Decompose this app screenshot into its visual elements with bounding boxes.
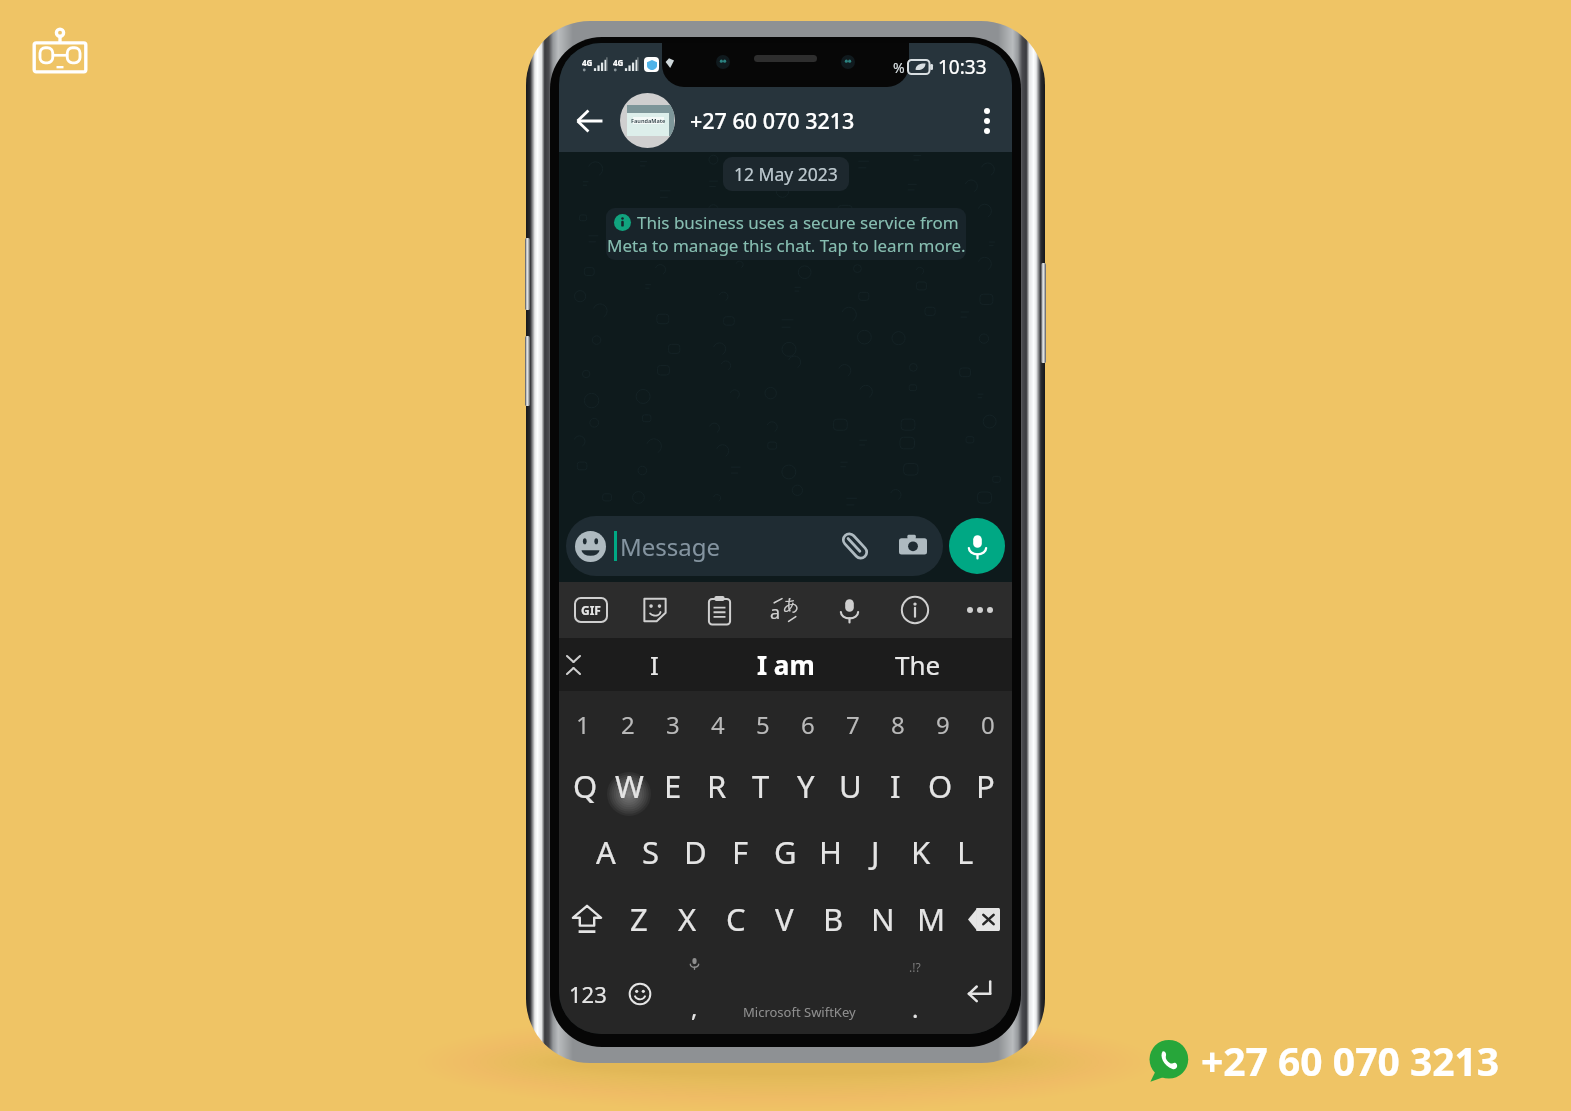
button[interactable]: 5 [740, 695, 785, 753]
staticText: Meta to manage this chat. Tap to learn m… [607, 234, 966, 257]
staticText: I [650, 647, 659, 682]
button[interactable]: 2 [605, 695, 650, 753]
staticText: L [957, 831, 974, 873]
button[interactable]: Emoji [617, 953, 663, 1034]
staticText: U [839, 765, 862, 807]
button[interactable]: Expand [559, 638, 588, 691]
button[interactable]: X [663, 885, 711, 953]
staticText: a [770, 600, 781, 625]
staticText: +27 60 070 3213 [1201, 1034, 1500, 1087]
button[interactable]: This business uses a secure service from [606, 208, 966, 260]
staticText: W [615, 765, 644, 807]
button[interactable]: Y [783, 753, 828, 819]
button[interactable]: G [763, 819, 808, 885]
button[interactable]: I [873, 753, 918, 819]
button[interactable]: Z [615, 885, 663, 953]
staticText: 12 May 2023 [734, 162, 838, 186]
staticText: X [678, 898, 697, 940]
button[interactable]: E [651, 753, 695, 819]
button[interactable]: Shift [559, 885, 615, 953]
staticText: 2 [621, 708, 635, 741]
staticText: 3 [666, 708, 680, 741]
button[interactable]: Q [563, 753, 607, 819]
button[interactable]: Space [725, 953, 884, 1034]
button[interactable]: Voice input [817, 582, 882, 638]
staticText: B [823, 898, 844, 940]
button[interactable]: Clipboard [687, 582, 752, 638]
button[interactable]: 6 [785, 695, 830, 753]
button[interactable]: Comma [663, 953, 725, 1034]
button[interactable]: Backspace [956, 885, 1012, 953]
button[interactable]: J [853, 819, 898, 885]
button[interactable]: More options [962, 89, 1012, 152]
button[interactable]: Attach [837, 528, 873, 564]
button[interactable]: N [858, 885, 907, 953]
button[interactable]: Camera [895, 528, 931, 564]
staticText: Z [630, 898, 648, 940]
button[interactable]: O [918, 753, 963, 819]
staticText: G [774, 831, 797, 873]
staticText: V [775, 898, 794, 940]
button[interactable]: H [808, 819, 853, 885]
button[interactable]: Voice message [949, 518, 1005, 574]
button[interactable]: I am [720, 638, 852, 691]
staticText: % [893, 58, 905, 77]
button[interactable]: B [809, 885, 858, 953]
button[interactable]: Stickers [623, 582, 687, 638]
button[interactable]: Profile photo [620, 93, 675, 148]
button[interactable]: 3 [650, 695, 695, 753]
button[interactable]: P [963, 753, 1008, 819]
button[interactable]: 12 May 2023 [723, 157, 849, 191]
staticText: 123 [569, 979, 607, 1009]
button[interactable]: F [718, 819, 763, 885]
staticText: .!? [909, 959, 921, 975]
staticText: 8 [891, 708, 905, 741]
staticText: 9 [936, 708, 950, 741]
button[interactable]: K [898, 819, 943, 885]
button[interactable]: 4 [695, 695, 740, 753]
staticText: J [871, 831, 880, 873]
staticText: This business uses a secure service from [637, 211, 959, 234]
staticText: あ [783, 595, 800, 615]
staticText: 6 [801, 708, 815, 741]
button[interactable]: T [739, 753, 783, 819]
button[interactable]: L [943, 819, 988, 885]
button[interactable]: S [628, 819, 673, 885]
staticText: . [912, 992, 919, 1025]
button[interactable]: 7 [830, 695, 875, 753]
button[interactable]: 8 [875, 695, 920, 753]
staticText: , [691, 991, 698, 1024]
staticText: I [890, 765, 901, 807]
button[interactable]: W [607, 753, 651, 819]
button[interactable]: GIF [559, 582, 623, 638]
button[interactable]: 0 [965, 695, 1010, 753]
button[interactable]: 1 [561, 695, 605, 753]
button[interactable]: D [673, 819, 718, 885]
staticText: GIF [581, 602, 601, 618]
button[interactable]: Enter [946, 953, 1012, 1034]
button[interactable]: 123 [559, 953, 617, 1034]
button[interactable]: Message [566, 516, 943, 576]
button[interactable]: More [947, 582, 1012, 638]
button[interactable]: V [760, 885, 809, 953]
button[interactable]: Info [882, 582, 947, 638]
staticText: K [911, 831, 931, 873]
button[interactable]: I [588, 638, 720, 691]
staticText: A [596, 831, 616, 873]
staticText: Q [573, 765, 598, 807]
button[interactable]: R [695, 753, 739, 819]
button[interactable]: Back [559, 89, 620, 152]
button[interactable]: A [583, 819, 628, 885]
button[interactable]: M [907, 885, 956, 953]
button[interactable]: Translate [752, 582, 817, 638]
button[interactable]: C [711, 885, 760, 953]
button[interactable]: Period [884, 953, 946, 1034]
staticText: 4G [582, 57, 593, 68]
button[interactable]: U [828, 753, 873, 819]
staticText: 1 [576, 708, 590, 741]
button[interactable]: The [852, 638, 984, 691]
staticText: T [752, 765, 770, 807]
staticText: Y [797, 765, 815, 807]
button[interactable]: 9 [920, 695, 965, 753]
staticText: C [726, 898, 746, 940]
